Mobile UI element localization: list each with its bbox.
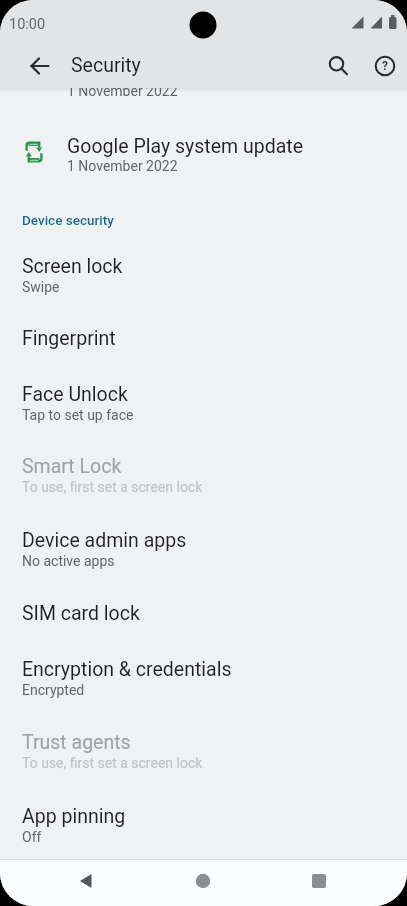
button[interactable] (64, 859, 108, 903)
button[interactable]: Face Unlock (0, 368, 407, 440)
staticText: App pinning (22, 805, 126, 828)
button[interactable]: Smart Lock (0, 440, 407, 512)
button[interactable]: Trust agents (0, 716, 407, 788)
staticText: No active apps (22, 553, 115, 569)
button[interactable]: Fingerprint (0, 311, 407, 367)
staticText: Screen lock (22, 255, 123, 278)
staticText: Trust agents (22, 731, 131, 754)
staticText: 10:00 (9, 16, 46, 33)
button[interactable]: App pinning (0, 790, 407, 855)
button[interactable]: Google Play system update (0, 117, 407, 189)
staticText: Encryption & credentials (22, 658, 232, 681)
button[interactable]: Device admin apps (0, 514, 407, 586)
button[interactable] (18, 44, 62, 88)
button[interactable] (297, 859, 341, 903)
button[interactable]: SIM card lock (0, 586, 407, 642)
staticText: To use, first set a screen lock (22, 479, 203, 495)
staticText: Device admin apps (22, 529, 187, 552)
staticText: To use, first set a screen lock (22, 755, 203, 771)
staticText: 1 November 2022 (67, 158, 178, 174)
button[interactable]: Screen lock (0, 240, 407, 312)
staticText: Tap to set up face (22, 407, 134, 423)
button[interactable] (316, 44, 360, 88)
staticText: SIM card lock (22, 602, 140, 625)
staticText: Swipe (22, 279, 60, 295)
staticText: Smart Lock (22, 455, 122, 478)
staticText: ? (382, 59, 388, 73)
staticText: Encrypted (22, 682, 85, 698)
staticText: Fingerprint (22, 327, 116, 350)
staticText: Face Unlock (22, 383, 128, 406)
staticText: Google Play system update (67, 135, 303, 158)
staticText: 1 November 2022 (67, 83, 178, 99)
staticText: Device security (22, 212, 114, 228)
staticText: Off (22, 829, 42, 845)
button[interactable]: ? (363, 44, 407, 88)
staticText: Security (71, 54, 141, 77)
button[interactable] (181, 859, 225, 903)
button[interactable]: Encryption & credentials (0, 643, 407, 715)
